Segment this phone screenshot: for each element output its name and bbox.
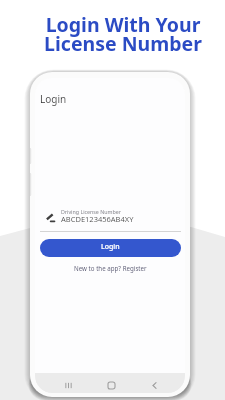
button[interactable]: Back — [148, 379, 160, 391]
button[interactable]: Login — [40, 239, 181, 257]
button[interactable]: New to the app? Register — [40, 264, 181, 272]
other: Edit — [46, 213, 55, 222]
button[interactable]: Home — [105, 379, 117, 391]
button[interactable]: Recents — [62, 379, 74, 391]
staticText: New to the app? Register — [74, 264, 147, 272]
staticText: Login — [40, 92, 67, 106]
staticText: Login With Your License Number — [44, 11, 202, 57]
staticText: ABCDE123456AB4XY — [61, 214, 134, 224]
staticText: Login — [101, 242, 120, 252]
staticText: Driving License Number — [61, 208, 121, 215]
